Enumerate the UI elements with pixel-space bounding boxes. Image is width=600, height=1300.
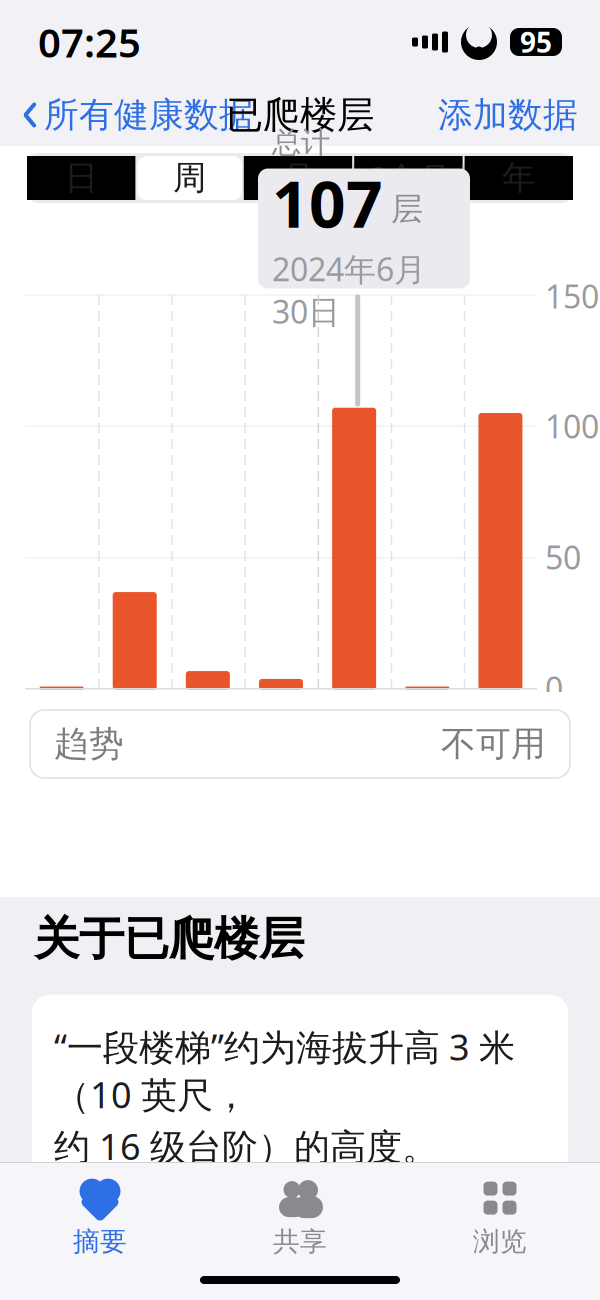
staticText: 关于已爬楼层: [34, 911, 304, 967]
button[interactable]: 所有健康数据: [22, 86, 254, 144]
staticText: 不可用: [441, 723, 546, 765]
button[interactable]: 日: [27, 153, 135, 203]
staticText: 总计: [272, 124, 330, 160]
button[interactable]: 6个月: [354, 153, 463, 203]
staticText: 95: [520, 23, 552, 61]
staticText: 趋势: [54, 723, 124, 765]
staticText: 所有健康数据: [44, 94, 254, 136]
staticText: 周五: [176, 695, 240, 734]
staticText: 07:25: [38, 15, 141, 68]
staticText: 150: [545, 275, 599, 317]
staticText: 摘要: [73, 1225, 127, 1258]
staticText: 月: [281, 157, 314, 198]
staticText: 已爬楼层: [226, 92, 374, 138]
staticText: 周二: [468, 695, 532, 734]
staticText: 2024年6月30日: [272, 247, 426, 332]
staticText: 100: [545, 405, 599, 447]
staticText: 层: [391, 189, 423, 229]
staticText: 周四: [103, 695, 167, 734]
button[interactable]: 添加数据: [438, 86, 578, 144]
staticText: 周: [173, 157, 206, 198]
staticText: 浏览: [473, 1225, 527, 1258]
staticText: 约 16 级台阶）的高度。: [54, 1122, 438, 1170]
button[interactable]: 趋势: [30, 710, 570, 778]
staticText: 周一: [395, 695, 459, 734]
staticText: 6个月: [366, 156, 451, 200]
staticText: 周六: [249, 695, 313, 734]
button[interactable]: 共享: [200, 1173, 400, 1263]
button[interactable]: 月: [244, 153, 352, 203]
staticText: 添加数据: [438, 94, 578, 136]
button[interactable]: 周: [135, 153, 244, 203]
staticText: 共享: [273, 1225, 327, 1258]
staticText: 年: [502, 157, 535, 198]
staticText: “一段楼梯”约为海拔升高 3 米（10 英尺，: [54, 1023, 515, 1118]
staticText: 0: [545, 667, 563, 709]
staticText: 周三: [30, 695, 94, 734]
button[interactable]: 浏览: [400, 1173, 600, 1263]
staticText: 107: [272, 160, 383, 245]
button[interactable]: 摘要: [0, 1173, 200, 1263]
staticText: 周日: [322, 695, 386, 734]
staticText: 日: [65, 157, 98, 198]
button[interactable]: 年: [465, 153, 573, 203]
staticText: 50: [545, 536, 581, 578]
